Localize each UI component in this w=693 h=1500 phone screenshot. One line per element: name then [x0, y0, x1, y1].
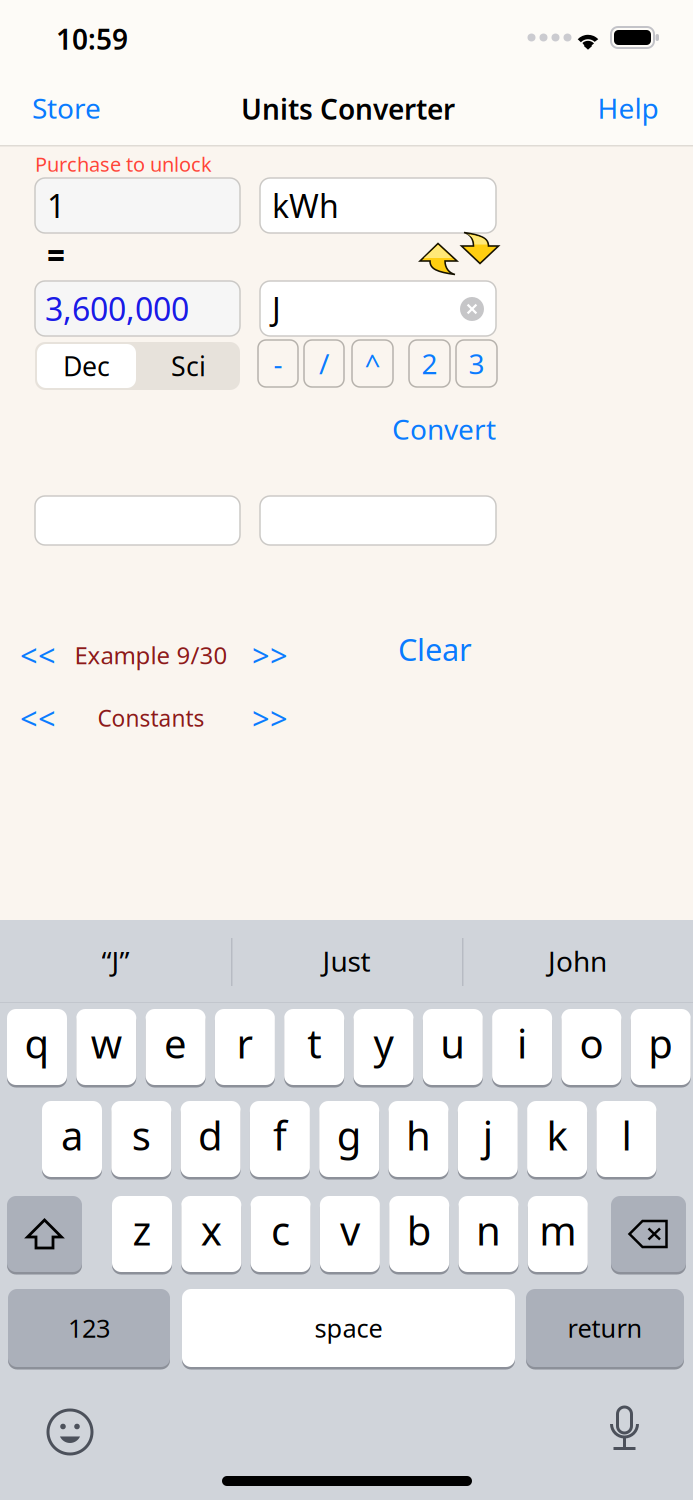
- button[interactable]: n: [458, 1196, 518, 1272]
- staticText: f: [273, 1108, 287, 1161]
- button[interactable]: b: [389, 1196, 449, 1272]
- button[interactable]: s: [111, 1101, 171, 1177]
- button[interactable]: >>: [248, 701, 292, 735]
- staticText: <<: [20, 635, 56, 675]
- staticText: Store: [32, 89, 101, 127]
- staticText: =: [47, 234, 65, 274]
- button[interactable]: Dictate: [605, 1404, 645, 1456]
- button[interactable]: Delete: [611, 1196, 686, 1272]
- staticText: d: [198, 1108, 223, 1161]
- staticText: Sci: [171, 348, 206, 384]
- button[interactable]: t: [284, 1009, 344, 1085]
- button[interactable]: y: [353, 1009, 413, 1085]
- button[interactable]: Sci: [139, 344, 238, 388]
- staticText: z: [132, 1203, 151, 1256]
- button[interactable]: Constants: [65, 701, 237, 735]
- button[interactable]: q: [7, 1009, 67, 1085]
- button[interactable]: Shift: [7, 1196, 82, 1272]
- staticText: r: [236, 1016, 253, 1069]
- button[interactable]: Dec: [37, 344, 136, 388]
- staticText: c: [271, 1203, 290, 1256]
- staticText: k: [547, 1108, 568, 1161]
- button[interactable]: f: [250, 1101, 310, 1177]
- staticText: 123: [68, 1311, 110, 1345]
- staticText: b: [407, 1203, 432, 1256]
- button[interactable]: John: [462, 920, 693, 1002]
- button[interactable]: d: [181, 1101, 241, 1177]
- staticText: y: [373, 1016, 393, 1069]
- button[interactable]: Help: [602, 93, 662, 123]
- staticText: m: [539, 1203, 576, 1256]
- staticText: l: [621, 1108, 631, 1161]
- button[interactable]: v: [320, 1196, 380, 1272]
- button[interactable]: w: [76, 1009, 136, 1085]
- staticText: Convert: [392, 410, 496, 448]
- staticText: a: [61, 1108, 83, 1161]
- staticText: Clear: [398, 629, 472, 669]
- staticText: Units Converter: [241, 90, 455, 128]
- staticText: 1: [47, 184, 65, 227]
- button[interactable]: Example 9/30: [65, 638, 237, 672]
- button[interactable]: Convert: [393, 415, 495, 443]
- button[interactable]: /: [304, 340, 344, 387]
- staticText: 2: [421, 345, 437, 382]
- button[interactable]: <<: [18, 638, 58, 672]
- staticText: Help: [597, 89, 658, 127]
- button[interactable]: 123: [8, 1289, 170, 1367]
- staticText: t: [307, 1016, 321, 1069]
- button[interactable]: <<: [18, 701, 58, 735]
- staticText: >>: [252, 698, 288, 738]
- button[interactable]: o: [561, 1009, 621, 1085]
- button[interactable]: Store: [32, 93, 142, 123]
- button[interactable]: i: [492, 1009, 552, 1085]
- button[interactable]: -: [258, 340, 298, 387]
- staticText: John: [548, 942, 607, 980]
- staticText: u: [440, 1016, 465, 1069]
- staticText: s: [132, 1108, 151, 1161]
- button[interactable]: return: [526, 1289, 684, 1367]
- button[interactable]: u: [423, 1009, 483, 1085]
- staticText: 3,600,000: [45, 287, 189, 330]
- staticText: >>: [252, 635, 288, 675]
- button[interactable]: >>: [248, 638, 292, 672]
- button[interactable]: a: [42, 1101, 102, 1177]
- button[interactable]: r: [215, 1009, 275, 1085]
- staticText: “J”: [101, 942, 129, 980]
- staticText: Purchase to unlock: [35, 151, 212, 177]
- staticText: j: [483, 1108, 493, 1161]
- staticText: 10:59: [56, 20, 128, 58]
- button[interactable]: g: [319, 1101, 379, 1177]
- button[interactable]: space: [182, 1289, 515, 1367]
- button[interactable]: k: [527, 1101, 587, 1177]
- button[interactable]: 2: [409, 340, 450, 387]
- button[interactable]: z: [112, 1196, 172, 1272]
- button[interactable]: Emoji keyboard: [47, 1409, 93, 1455]
- button[interactable]: e: [146, 1009, 206, 1085]
- staticText: Dec: [63, 348, 110, 384]
- button[interactable]: Clear text: [460, 297, 484, 321]
- button[interactable]: l: [596, 1101, 656, 1177]
- button[interactable]: p: [631, 1009, 691, 1085]
- button[interactable]: x: [181, 1196, 241, 1272]
- button[interactable]: “J”: [0, 920, 231, 1002]
- button[interactable]: Clear: [397, 634, 473, 664]
- button[interactable]: h: [388, 1101, 448, 1177]
- button[interactable]: Just: [231, 920, 462, 1002]
- staticText: w: [91, 1016, 122, 1069]
- staticText: x: [201, 1203, 222, 1256]
- button[interactable]: j: [458, 1101, 518, 1177]
- button[interactable]: 3: [456, 340, 497, 387]
- staticText: o: [579, 1016, 603, 1069]
- button[interactable]: c: [251, 1196, 311, 1272]
- staticText: kWh: [272, 184, 339, 227]
- staticText: q: [24, 1016, 49, 1069]
- button[interactable]: m: [528, 1196, 588, 1272]
- staticText: <<: [20, 698, 56, 738]
- staticText: Example 9/30: [74, 639, 227, 671]
- staticText: 3: [468, 345, 484, 382]
- button[interactable]: ^: [352, 340, 393, 387]
- staticText: space: [314, 1311, 382, 1345]
- staticText: -: [273, 345, 282, 382]
- button[interactable]: Swap units: [417, 229, 503, 279]
- staticText: ^: [364, 345, 380, 382]
